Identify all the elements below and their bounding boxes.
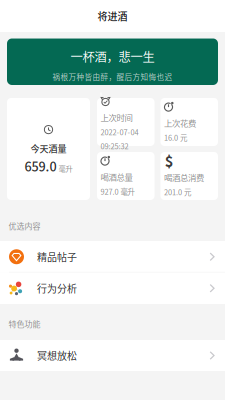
staticText: 冥想放松 (37, 348, 77, 363)
staticText: 上次时间 (100, 111, 132, 123)
staticText: 喝酒总量 (100, 171, 132, 183)
staticText: 上次花费 (164, 117, 196, 129)
staticText: 一杯酒，悲一生 (70, 47, 154, 65)
staticText: 优选内容 (8, 220, 40, 232)
staticText: 祸根万种皆由醉，醒后方知悔也迟 (52, 71, 172, 82)
staticText: 喝酒总消费 (164, 171, 204, 183)
staticText: 927.0 毫升 (100, 186, 134, 197)
staticText: 16.0 元 (164, 132, 187, 143)
staticText: 精品帖子 (37, 249, 77, 264)
staticText: 659.0 (24, 157, 56, 175)
staticText: 2022-07-04 (100, 127, 138, 137)
staticText: 毫升 (58, 163, 72, 174)
staticText: 09:25:32 (100, 141, 128, 151)
button[interactable]: 行为分析 (0, 272, 225, 304)
staticText: $ (165, 150, 174, 171)
staticText: 201.0 元 (164, 187, 191, 197)
staticText: 行为分析 (37, 281, 77, 295)
staticText: 今天酒量 (30, 142, 66, 155)
staticText: 将进酒 (97, 9, 127, 23)
button[interactable]: 精品帖子 (0, 241, 225, 272)
button[interactable]: 冥想放松 (0, 340, 225, 371)
staticText: 特色功能 (8, 318, 40, 330)
